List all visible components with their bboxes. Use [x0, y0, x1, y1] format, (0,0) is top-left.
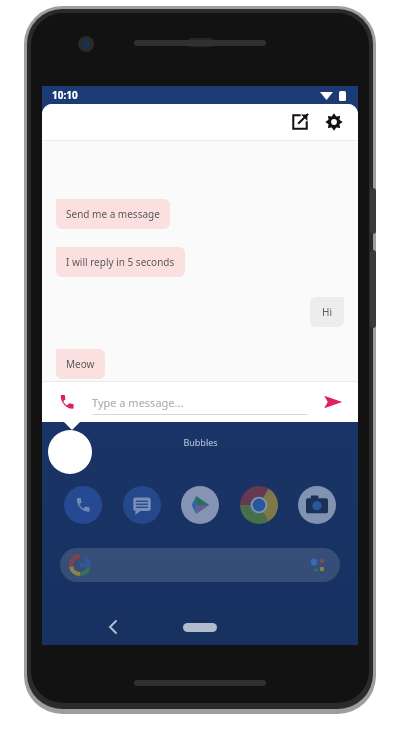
button[interactable]: Send	[322, 391, 344, 413]
staticText: Type a message...	[92, 395, 184, 410]
button[interactable]: Back	[100, 614, 126, 640]
button[interactable]: Call	[56, 391, 78, 413]
staticText: Send me a message	[66, 207, 160, 221]
button[interactable]: Meow	[56, 349, 105, 379]
staticText: Meow	[66, 357, 95, 371]
button[interactable]: Camera	[298, 486, 336, 524]
button[interactable]: Settings	[322, 110, 346, 134]
button[interactable]: Send me a message	[56, 199, 170, 229]
button[interactable]: Type a message...	[92, 389, 308, 415]
button[interactable]: Messages	[123, 486, 161, 524]
button[interactable]: I will reply in 5 seconds	[56, 247, 185, 277]
button[interactable]: Bubble	[48, 430, 92, 474]
staticText: Bubbles	[183, 436, 218, 448]
button[interactable]: Open in app	[288, 110, 312, 134]
staticText: 10:10	[52, 88, 78, 102]
button[interactable]: Chrome	[240, 486, 278, 524]
staticText: I will reply in 5 seconds	[66, 255, 175, 269]
button[interactable]: Home	[183, 623, 217, 632]
button[interactable]: Hi	[310, 297, 344, 327]
staticText: Hi	[322, 305, 332, 319]
button[interactable]: Play Store	[181, 486, 219, 524]
button[interactable]: Phone	[64, 486, 102, 524]
button[interactable]: Google search	[60, 548, 340, 582]
